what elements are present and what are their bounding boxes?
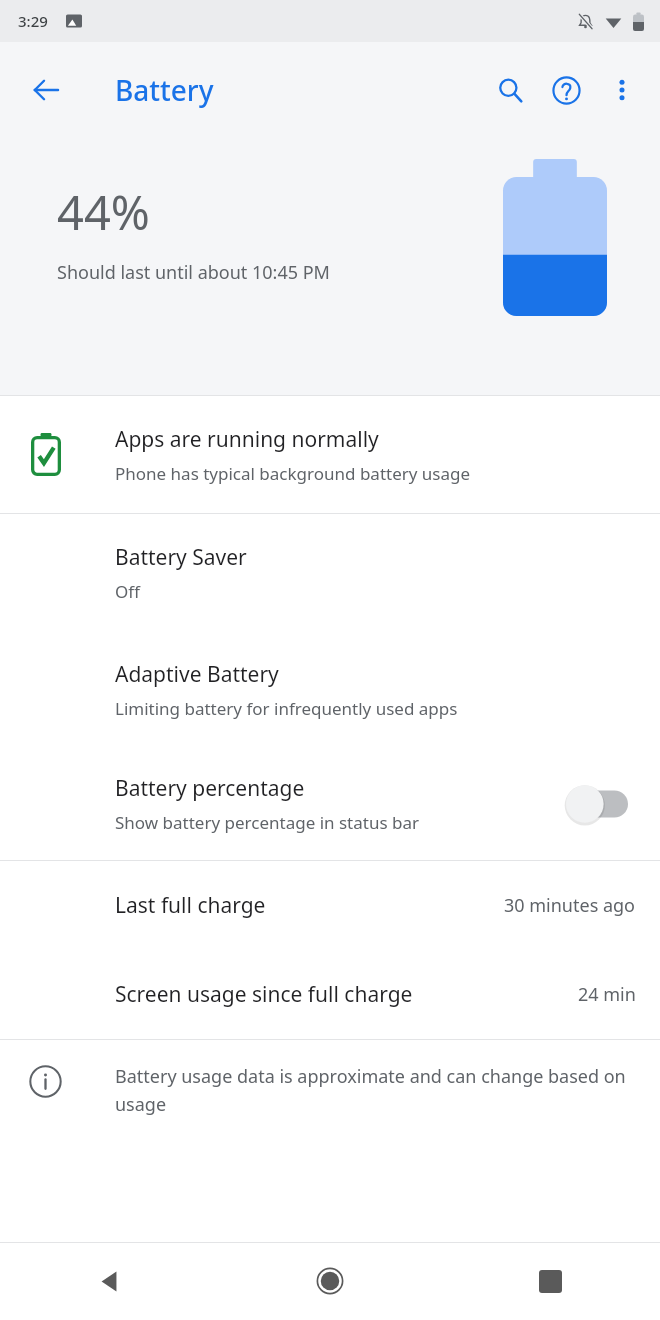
staticText: Should last until about 10:45 PM <box>57 260 330 285</box>
staticText: Off <box>115 580 140 603</box>
staticText: Apps are running normally <box>115 425 379 454</box>
staticText: 3:29 <box>18 11 48 31</box>
button[interactable]: Help <box>538 62 594 118</box>
button[interactable]: Back <box>0 1242 220 1320</box>
button[interactable]: Adaptive Battery <box>0 632 660 748</box>
button[interactable]: Back <box>18 62 74 118</box>
staticText: Battery percentage <box>115 774 305 803</box>
staticText: Screen usage since full charge <box>115 980 413 1009</box>
button[interactable]: Last full charge <box>0 861 660 950</box>
staticText: Last full charge <box>115 891 266 920</box>
button[interactable]: Screen usage since full charge <box>0 950 660 1039</box>
staticText: 30 minutes ago <box>504 893 636 918</box>
button[interactable]: More options <box>594 62 650 118</box>
button[interactable]: Recent apps <box>440 1242 660 1320</box>
button[interactable]: Apps are running normally <box>0 396 660 513</box>
staticText: Limiting battery for infrequently used a… <box>115 697 458 720</box>
button[interactable]: Battery Saver <box>0 514 660 632</box>
staticText: 24 min <box>578 982 636 1007</box>
button[interactable]: Search <box>482 62 538 118</box>
button[interactable]: Battery percentage <box>0 748 660 860</box>
staticText: Phone has typical background battery usa… <box>115 462 471 485</box>
staticText: Battery usage data is approximate and ca… <box>115 1064 628 1116</box>
staticText: Battery Saver <box>115 543 247 572</box>
staticText: Battery <box>115 71 214 109</box>
staticText: Adaptive Battery <box>115 660 279 689</box>
staticText: Show battery percentage in status bar <box>115 811 419 834</box>
staticText: 44% <box>57 180 150 244</box>
button[interactable]: Home <box>220 1242 440 1320</box>
